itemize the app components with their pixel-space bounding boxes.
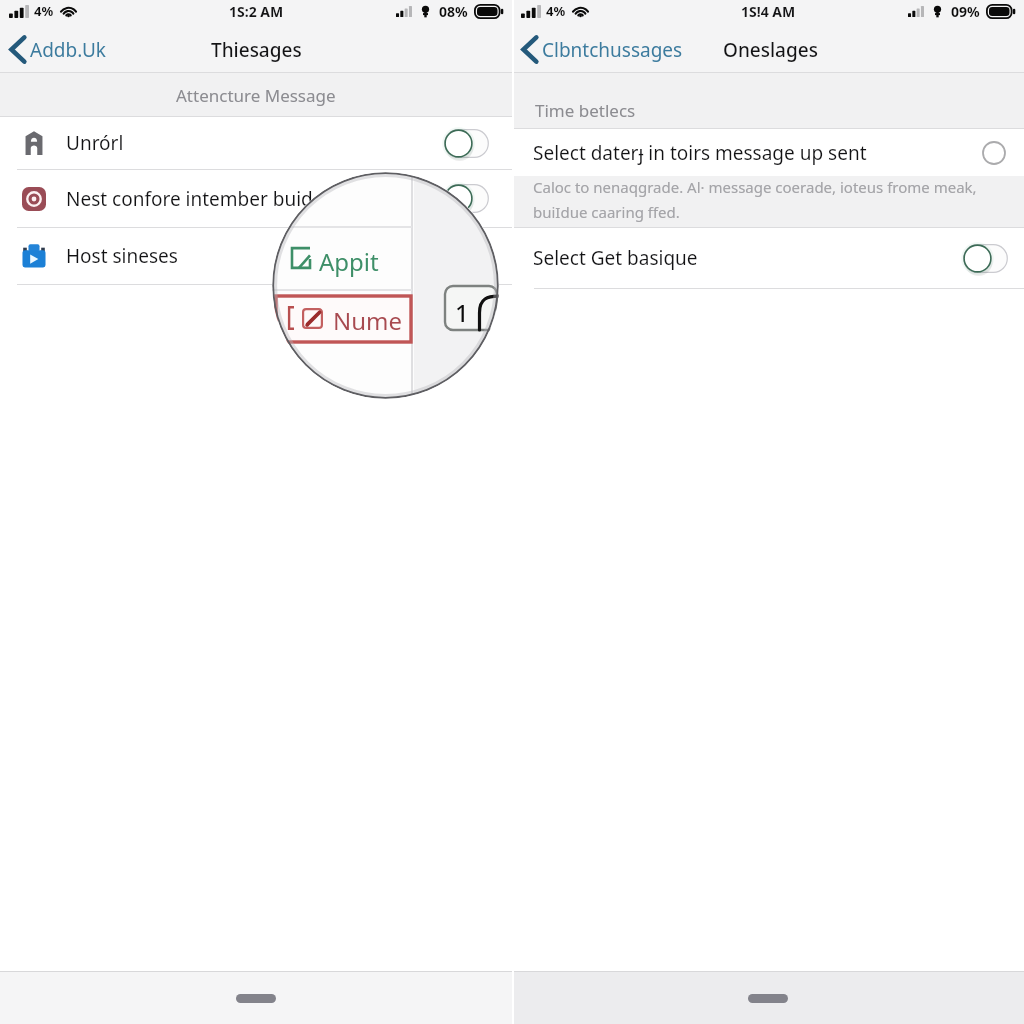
staticText: Addb.Uk	[30, 37, 106, 63]
staticText: 1	[455, 296, 469, 329]
other: Back	[520, 35, 539, 64]
staticText: 4%	[546, 2, 566, 20]
staticText: Appit	[319, 245, 379, 278]
button[interactable]: Unrórl	[0, 117, 512, 169]
staticText: Unrórl	[66, 130, 124, 156]
staticText: Select daterɟ in toirs message up sent	[533, 140, 867, 166]
button[interactable]: Select daterɟ in toirs message up sent	[512, 129, 1024, 176]
staticText: 4%	[34, 2, 54, 20]
staticText: 1S:2 AM	[229, 2, 284, 21]
button[interactable]: Back	[8, 26, 106, 73]
other: Back	[8, 35, 27, 64]
staticText: Attencture Message	[176, 84, 336, 107]
staticText: 1S!4 AM	[741, 2, 796, 21]
staticText: 08%	[439, 2, 468, 21]
staticText: Clbntchussages	[542, 37, 683, 63]
staticText: Host sineses	[66, 243, 178, 269]
staticText: Nume	[333, 304, 403, 337]
staticText: Time betlecs	[535, 99, 636, 122]
staticText: 09%	[951, 2, 980, 21]
button[interactable]: Nest confore intember buid	[0, 170, 512, 227]
button[interactable]: Select Get basique	[512, 228, 1024, 288]
staticText: Thiesages	[211, 37, 302, 63]
staticText: Oneslages	[723, 37, 818, 63]
button[interactable]: Host sineses	[0, 228, 512, 284]
button[interactable]: Back	[520, 26, 683, 73]
staticText: Nest confore intember buid	[66, 186, 313, 212]
staticText: Select Get basique	[533, 245, 698, 271]
staticText: Caloc to nenaqgrade. Al· message coerade…	[533, 177, 977, 222]
